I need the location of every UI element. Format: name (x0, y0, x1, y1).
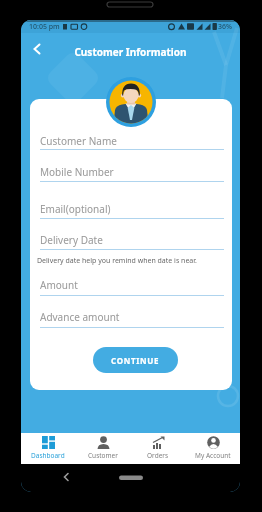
staticText: Mobile Number (40, 165, 114, 179)
staticText: Delivery date help you remind when date … (37, 256, 197, 266)
staticText: Dashboard (31, 451, 65, 460)
staticText: My Account (195, 451, 231, 460)
staticText: Advance amount (40, 310, 120, 324)
staticText: Customer Information (21, 45, 240, 59)
button[interactable]: Dashboard (21, 433, 75, 464)
button[interactable]: CONTINUE (93, 347, 178, 373)
staticText: Email(optional) (40, 202, 111, 216)
staticText: Customer (88, 451, 118, 460)
button[interactable]: Mobile Number (37, 163, 227, 183)
button[interactable]: Email(optional) (37, 200, 227, 220)
button[interactable]: Advance amount (37, 308, 227, 329)
staticText: Customer Name (40, 134, 117, 148)
staticText: Amount (40, 278, 78, 292)
button[interactable]: Customer Name (37, 132, 227, 151)
button[interactable] (27, 39, 47, 59)
button[interactable]: Delivery Date (37, 231, 227, 251)
button[interactable]: My Account (186, 433, 240, 464)
staticText: Delivery Date (40, 233, 103, 247)
button[interactable]: Amount (37, 276, 227, 297)
staticText: Orders (147, 451, 169, 460)
staticText: CONTINUE (111, 355, 160, 366)
staticText: 36% (218, 22, 232, 32)
staticText: 10:05 pm (29, 22, 60, 32)
button[interactable]: Orders (131, 433, 185, 464)
button[interactable]: Customer (76, 433, 130, 464)
